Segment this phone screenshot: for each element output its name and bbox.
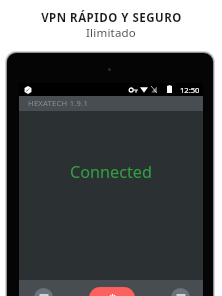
staticText: VPN RÁPIDO Y SEGURO [41, 10, 182, 26]
button[interactable]: Settings [171, 288, 190, 296]
staticText: Ilimitado [86, 25, 136, 41]
staticText: 12:50 [180, 85, 200, 95]
button[interactable]: Servers [34, 288, 53, 296]
button[interactable]: Disconnect [89, 287, 135, 296]
staticText: Connected [70, 161, 152, 181]
staticText: HEXATECH 1.9.1 [28, 98, 89, 108]
